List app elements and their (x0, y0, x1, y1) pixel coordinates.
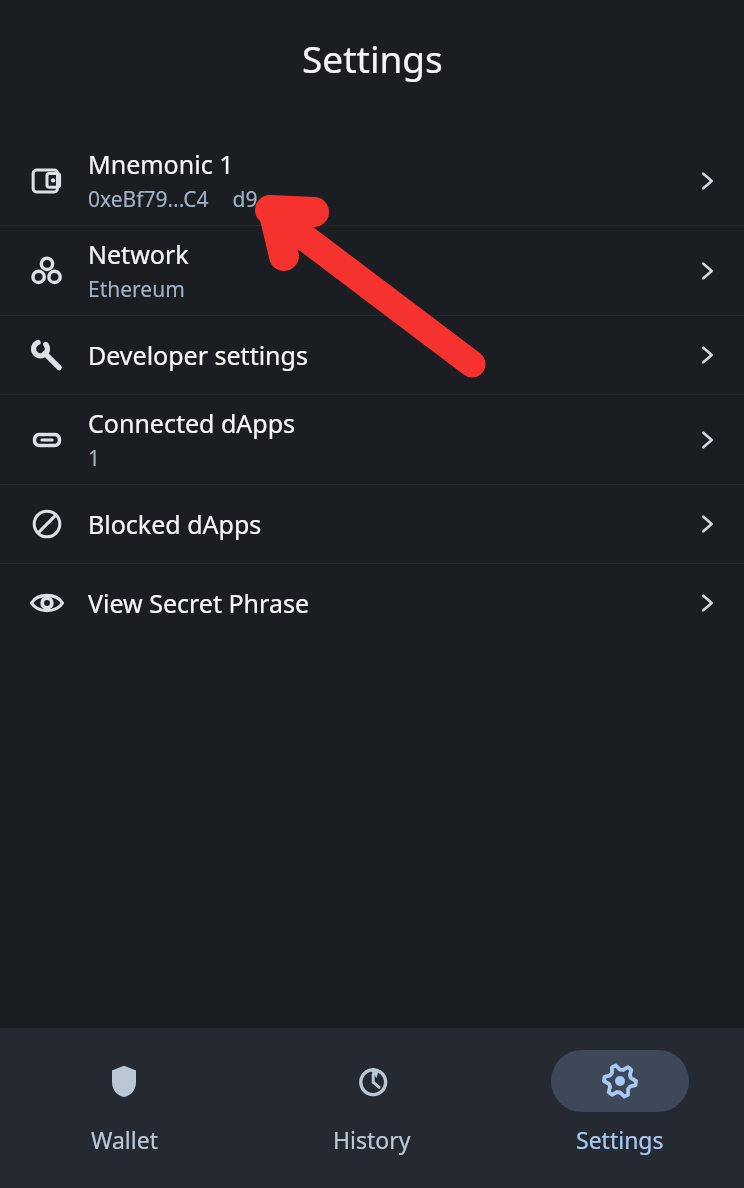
button[interactable]: History (248, 1028, 496, 1155)
button[interactable]: Connected dApps (0, 395, 744, 484)
other: Developer settings (26, 334, 68, 376)
button[interactable]: Developer settings (0, 316, 744, 394)
staticText: Wallet (91, 1124, 158, 1155)
staticText: Mnemonic 1 (88, 147, 234, 181)
staticText: Connected dApps (88, 406, 296, 440)
other: Network (26, 250, 68, 292)
staticText: History (333, 1124, 411, 1155)
staticText: Settings (302, 33, 443, 83)
button[interactable]: Blocked dApps (0, 485, 744, 563)
button[interactable]: View secret phrase (0, 564, 744, 642)
button[interactable]: Settings (496, 1028, 744, 1155)
staticText: Developer settings (88, 338, 308, 372)
staticText: View Secret Phrase (88, 586, 309, 620)
staticText: 0xeBf79...C4 d9 (88, 185, 258, 214)
other: Blocked dApps (26, 503, 68, 545)
button[interactable]: Mnemonic wallet (0, 136, 744, 225)
staticText: Network (88, 237, 189, 271)
staticText: Ethereum (88, 275, 185, 304)
staticText: Settings (576, 1124, 664, 1155)
button[interactable]: Wallet (0, 1028, 248, 1155)
other: Mnemonic wallet (26, 160, 68, 202)
other: Connected dApps (26, 419, 68, 461)
staticText: Blocked dApps (88, 507, 262, 541)
other: View secret phrase (26, 582, 68, 624)
button[interactable]: Network (0, 226, 744, 315)
staticText: 1 (88, 444, 101, 473)
